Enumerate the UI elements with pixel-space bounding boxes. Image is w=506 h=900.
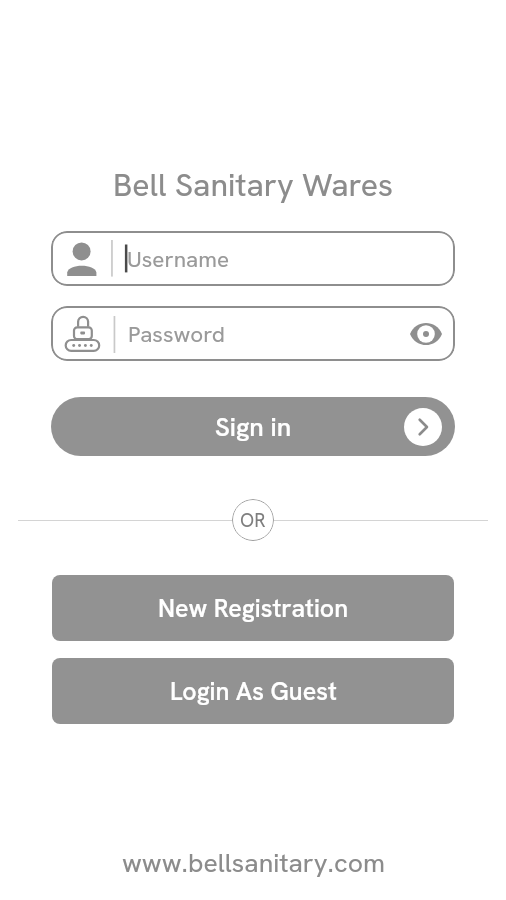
button[interactable]: New Registration — [52, 575, 454, 641]
staticText: OR — [240, 508, 266, 533]
button[interactable]: Password — [51, 306, 455, 361]
staticText: Password — [128, 319, 226, 348]
staticText: www.bellsanitary.com — [122, 845, 385, 880]
staticText: Username — [127, 244, 230, 273]
button[interactable]: Login As Guest — [52, 658, 454, 724]
button[interactable]: Show password — [404, 312, 448, 356]
staticText: Bell Sanitary Wares — [113, 164, 394, 206]
button[interactable]: Username — [51, 231, 455, 286]
button[interactable]: Sign in — [51, 397, 455, 456]
staticText: Sign in — [215, 410, 292, 444]
staticText: Login As Guest — [170, 675, 337, 708]
staticText: New Registration — [158, 592, 349, 625]
